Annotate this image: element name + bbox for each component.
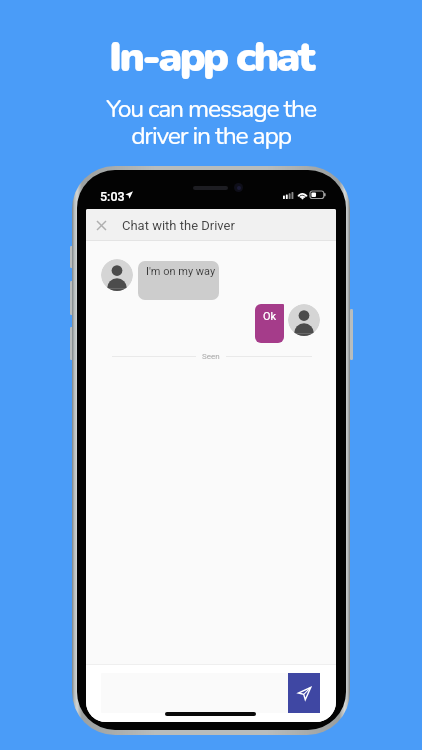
staticText: Ok bbox=[263, 310, 277, 323]
button[interactable] bbox=[101, 673, 320, 713]
button[interactable]: Close chat bbox=[90, 214, 113, 237]
button[interactable]: Ok bbox=[255, 304, 284, 343]
staticText: I'm on my way bbox=[146, 265, 216, 278]
staticText: Seen bbox=[202, 352, 220, 361]
button[interactable]: I'm on my way bbox=[138, 261, 219, 300]
staticText: You can message the driver in the app bbox=[0, 92, 422, 153]
staticText: In-app chat bbox=[0, 29, 422, 86]
button[interactable]: Send message bbox=[288, 673, 320, 713]
staticText: 5:03 bbox=[100, 189, 125, 204]
staticText: Chat with the Driver bbox=[122, 218, 235, 233]
